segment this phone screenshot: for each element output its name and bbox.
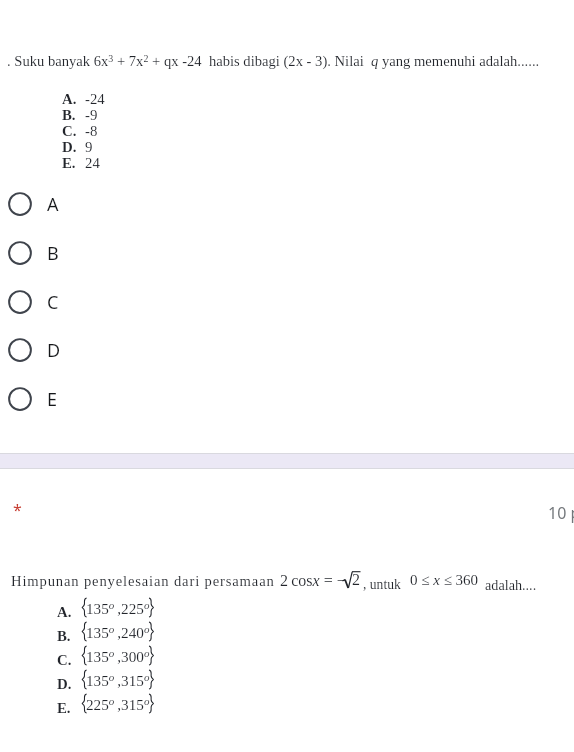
staticText: 2 [352,571,360,589]
staticText: * [13,499,22,521]
staticText: 2 cosx = − [280,572,346,590]
staticText: A. [57,604,72,620]
staticText: D. [57,676,72,692]
staticText: A [47,192,59,217]
staticText: E. [57,700,71,716]
staticText: -9 [85,107,98,123]
staticText: B. [57,628,71,644]
staticText: . Suku banyak 6x3 + 7x2 + qx -24 habis d… [7,53,540,70]
staticText: -24 [85,91,105,107]
staticText: -8 [85,123,98,139]
staticText: 135o ,300o [86,647,150,665]
button[interactable]: A [0,180,574,228]
staticText: 9 [85,139,93,155]
staticText: C. [62,123,77,139]
staticText: C. [57,652,72,668]
staticText: B. [62,107,76,123]
button[interactable]: E [0,375,574,423]
staticText: D. [62,139,77,155]
staticText: 10 p [548,502,574,524]
staticText: 225o ,315o [86,695,150,713]
staticText: 0 ≤ x ≤ 360 [410,572,479,589]
staticText: 135o ,225o [86,599,150,617]
staticText: A. [62,91,77,107]
staticText: D [47,338,61,363]
button[interactable]: D [0,326,574,374]
staticText: E [47,387,58,412]
staticText: C [47,290,59,315]
staticText: , untuk [363,577,401,592]
staticText: adalah.... [485,577,537,593]
button[interactable]: B [0,229,574,277]
button[interactable]: C [0,278,574,326]
staticText: 24 [85,155,100,171]
staticText: 135o ,240o [86,623,150,641]
staticText: E. [62,155,76,171]
staticText: Himpunan penyelesaian dari persamaan [11,573,275,589]
staticText: B [47,241,59,266]
staticText: 135o ,315o [86,671,150,689]
